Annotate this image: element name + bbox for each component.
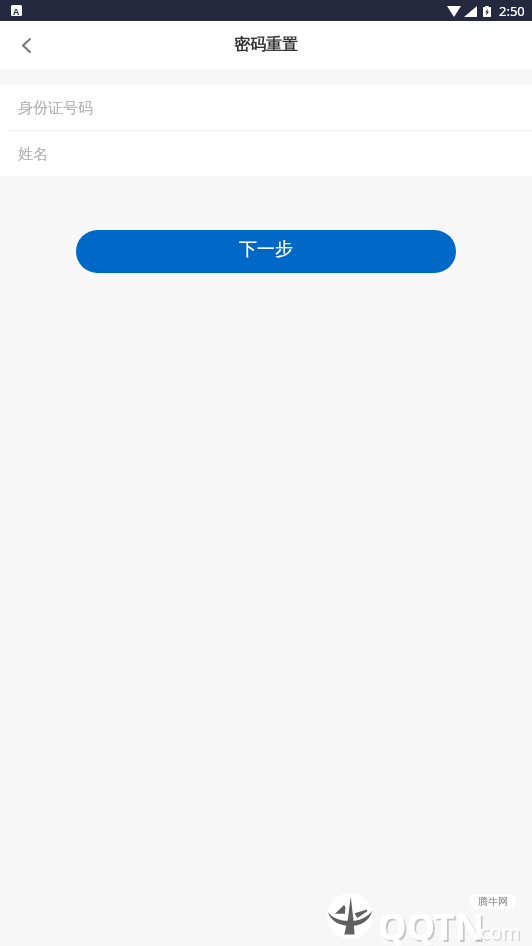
staticText: A <box>13 5 20 16</box>
staticText: .com <box>474 918 520 945</box>
staticText: .com <box>476 920 522 946</box>
staticText: 身份证号码 <box>18 99 93 118</box>
staticText: QQTN <box>380 904 486 946</box>
staticText: QQTN <box>378 902 484 946</box>
staticText: 下一步 <box>239 238 293 261</box>
staticText: 2:50 <box>499 2 525 20</box>
button[interactable]: Back <box>0 21 48 69</box>
button[interactable]: 身份证号码 <box>0 85 532 130</box>
staticText: 密码重置 <box>234 35 298 55</box>
button[interactable]: 下一步 <box>76 230 456 273</box>
staticText: 姓名 <box>18 145 48 164</box>
staticText: 腾牛网 <box>478 895 508 908</box>
button[interactable]: 姓名 <box>0 131 532 176</box>
